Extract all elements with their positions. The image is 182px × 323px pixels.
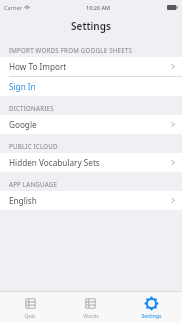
staticText: Settings — [141, 312, 162, 319]
staticText: PUBLIC ICLOUD — [9, 142, 58, 150]
staticText: APP LANGUAGE — [9, 180, 58, 188]
staticText: Hidden Vocabulary Sets — [9, 157, 100, 168]
button[interactable]: Settings — [121, 292, 182, 323]
staticText: Settings — [71, 19, 111, 33]
staticText: DICTIONARIES — [9, 104, 54, 112]
button[interactable]: Words — [60, 292, 121, 323]
staticText: IMPORT WORDS FROM GOOGLE SHEETS — [9, 46, 133, 54]
staticText: Words — [83, 312, 99, 319]
staticText: English — [9, 195, 37, 206]
staticText: How To Import — [9, 61, 67, 72]
staticText: Google — [9, 119, 37, 130]
button[interactable]: Sign In — [0, 77, 182, 96]
button[interactable]: English — [0, 191, 182, 210]
button[interactable]: Hidden Vocabulary Sets — [0, 153, 182, 172]
button[interactable]: Google — [0, 115, 182, 134]
staticText: Quiz — [24, 312, 36, 319]
staticText: Carrier — [4, 4, 22, 11]
staticText: Sign In — [9, 81, 36, 92]
button[interactable]: Quiz — [0, 292, 60, 323]
staticText: 10:26 AM — [86, 4, 111, 11]
button[interactable]: How To Import — [0, 57, 182, 76]
